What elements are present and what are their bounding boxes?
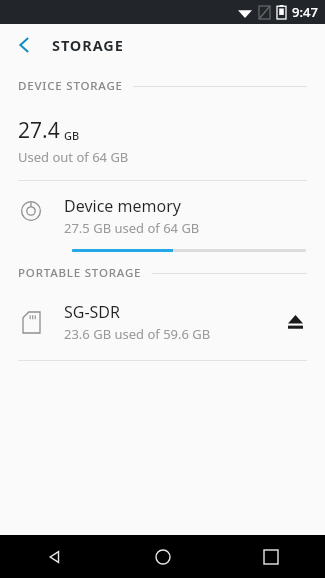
staticText: 27.5 GB used of 64 GB: [64, 219, 200, 237]
staticText: 23.6 GB used of 59.6 GB: [64, 325, 211, 343]
staticText: DEVICE STORAGE: [18, 78, 123, 94]
button[interactable]: Recent apps: [217, 535, 325, 578]
staticText: SG-SDR: [64, 301, 121, 323]
button[interactable]: Device memory: [0, 181, 325, 252]
button[interactable]: SG-SDR: [0, 295, 325, 349]
staticText: 27.4: [18, 116, 60, 145]
staticText: PORTABLE STORAGE: [18, 265, 142, 281]
staticText: STORAGE: [52, 35, 124, 55]
staticText: 9:47: [292, 3, 318, 21]
staticText: Used out of 64 GB: [18, 148, 129, 166]
staticText: Device memory: [64, 195, 181, 217]
button[interactable]: Back: [0, 535, 109, 578]
button[interactable]: Back: [6, 27, 42, 63]
button[interactable]: Eject: [275, 302, 315, 342]
button[interactable]: Home: [109, 535, 217, 578]
staticText: GB: [64, 128, 80, 143]
